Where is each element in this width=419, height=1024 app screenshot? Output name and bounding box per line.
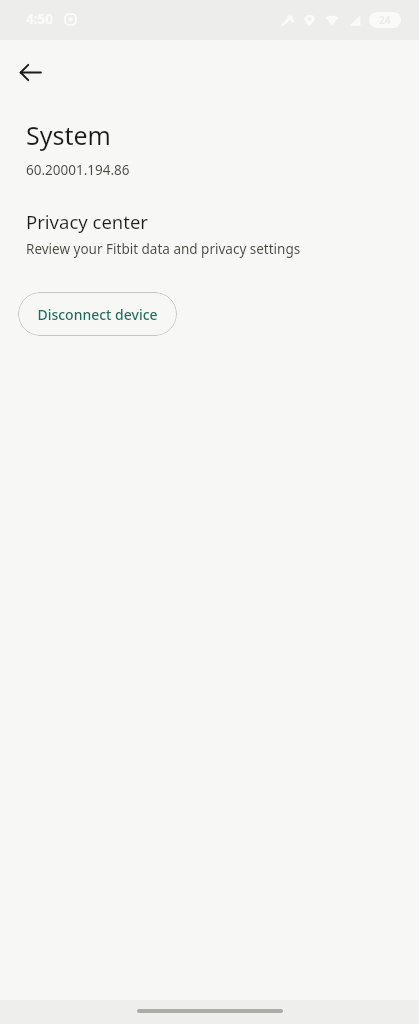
staticText: Disconnect device — [37, 305, 158, 324]
staticText: 24 — [379, 13, 391, 27]
staticText: 60.20001.194.86 — [26, 161, 130, 179]
button[interactable]: Privacy center — [0, 207, 419, 264]
button[interactable]: Back — [6, 48, 54, 96]
staticText: Privacy center — [26, 209, 149, 234]
staticText: Review your Fitbit data and privacy sett… — [26, 240, 301, 258]
button[interactable]: Disconnect device — [18, 292, 177, 336]
staticText: 4:50 — [26, 10, 53, 28]
staticText: System — [26, 118, 111, 152]
